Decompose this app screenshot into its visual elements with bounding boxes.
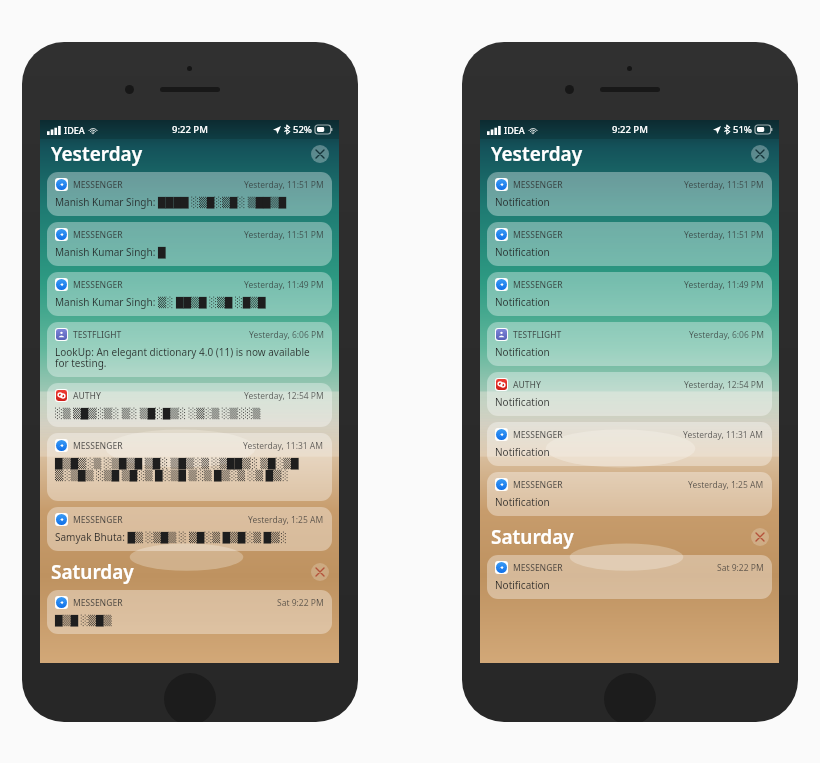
staticText: MESSENGER — [73, 597, 123, 609]
staticText: Manish Kumar Singh: ████ ░▒█░▒█░ ▒██▒█ — [55, 195, 287, 209]
staticText: Yesterday, 6:06 PM — [689, 329, 764, 341]
staticText: MESSENGER — [513, 429, 563, 441]
staticText: MESSENGER — [73, 229, 123, 241]
staticText: Yesterday, 11:49 PM — [684, 279, 764, 291]
staticText: Yesterday — [51, 141, 143, 167]
staticText: Sat 9:22 PM — [717, 562, 764, 574]
staticText: 9:22 PM — [172, 123, 208, 136]
staticText: AUTHY — [513, 379, 541, 391]
staticText: IDEA — [504, 124, 525, 136]
staticText: Yesterday, 6:06 PM — [249, 329, 324, 341]
staticText: Manish Kumar Singh: █ — [55, 245, 166, 259]
button[interactable]: MESSENGER — [487, 422, 772, 466]
staticText: 52% — [293, 123, 312, 136]
staticText: Yesterday, 11:49 PM — [244, 279, 324, 291]
staticText: Yesterday, 1:25 AM — [688, 479, 764, 491]
button[interactable]: TESTFLIGHT — [487, 322, 772, 366]
staticText: LookUp: An elegant dictionary 4.0 (11) i… — [55, 345, 324, 370]
button[interactable]: MESSENGER — [47, 272, 332, 316]
button[interactable]: MESSENGER — [487, 272, 772, 316]
staticText: Notification — [495, 245, 550, 259]
staticText: MESSENGER — [73, 514, 123, 526]
staticText: Saturday — [491, 524, 574, 550]
staticText: Yesterday, 12:54 PM — [244, 390, 324, 402]
button[interactable]: MESSENGER — [47, 590, 332, 634]
button[interactable]: MESSENGER — [47, 222, 332, 266]
staticText: AUTHY — [73, 390, 101, 402]
button[interactable]: MESSENGER — [47, 507, 332, 551]
staticText: Samyak Bhuta: █▒ ░▒█▒ ░ ▒█░▒ █▒█░▒ █▒░ — [55, 530, 287, 544]
staticText: ░▒ ▒█▒░▒░ ▒░ ▒█░█▒░ ░▒░▒ ░▒░░▒ — [55, 406, 261, 420]
staticText: Sat 9:22 PM — [277, 597, 324, 609]
button[interactable]: MESSENGER — [47, 172, 332, 216]
staticText: █▒█ ░▒█▒ — [55, 613, 112, 627]
staticText: Yesterday, 11:51 PM — [244, 179, 324, 191]
staticText: MESSENGER — [513, 562, 563, 574]
staticText: Yesterday, 11:51 PM — [684, 229, 764, 241]
staticText: Saturday — [51, 559, 134, 585]
button[interactable]: MESSENGER — [47, 433, 332, 501]
button[interactable]: MESSENGER — [487, 472, 772, 516]
staticText: Yesterday — [491, 141, 583, 167]
staticText: Yesterday, 12:54 PM — [684, 379, 764, 391]
staticText: 51% — [733, 123, 752, 136]
staticText: Notification — [495, 495, 550, 509]
staticText: Yesterday, 1:25 AM — [248, 514, 324, 526]
staticText: Manish Kumar Singh: ▒░ ██▒█ ░▒█ ░█▒█ — [55, 295, 266, 309]
staticText: Notification — [495, 578, 550, 592]
button[interactable]: Clear Saturday — [311, 563, 329, 581]
button[interactable]: AUTHY — [47, 383, 332, 427]
button[interactable]: Clear Saturday — [751, 528, 769, 546]
staticText: Notification — [495, 195, 550, 209]
staticText: MESSENGER — [513, 279, 563, 291]
staticText: █▒█▒░▒ ░▒█▒█ ▒█░ ▒█▒░▒ ░▒██▒░ ▒█░▒█ ▒░▒█… — [55, 456, 324, 481]
staticText: Notification — [495, 445, 550, 459]
button[interactable]: Home — [164, 673, 216, 722]
button[interactable]: TESTFLIGHT — [47, 322, 332, 377]
button[interactable]: MESSENGER — [487, 555, 772, 599]
button[interactable]: Home — [604, 673, 656, 722]
staticText: MESSENGER — [73, 179, 123, 191]
staticText: TESTFLIGHT — [73, 329, 122, 341]
staticText: Notification — [495, 295, 550, 309]
staticText: Yesterday, 11:51 PM — [684, 179, 764, 191]
staticText: Yesterday, 11:31 AM — [683, 429, 764, 441]
staticText: MESSENGER — [73, 279, 123, 291]
staticText: TESTFLIGHT — [513, 329, 562, 341]
button[interactable]: Clear Yesterday — [751, 145, 769, 163]
staticText: MESSENGER — [513, 229, 563, 241]
staticText: MESSENGER — [73, 440, 123, 452]
staticText: MESSENGER — [513, 479, 563, 491]
staticText: Yesterday, 11:51 PM — [244, 229, 324, 241]
button[interactable]: MESSENGER — [487, 222, 772, 266]
staticText: Notification — [495, 395, 550, 409]
staticText: MESSENGER — [513, 179, 563, 191]
staticText: Yesterday, 11:31 AM — [243, 440, 324, 452]
staticText: Notification — [495, 345, 550, 359]
button[interactable]: Clear Yesterday — [311, 145, 329, 163]
staticText: IDEA — [64, 124, 85, 136]
staticText: 9:22 PM — [612, 123, 648, 136]
button[interactable]: MESSENGER — [487, 172, 772, 216]
button[interactable]: AUTHY — [487, 372, 772, 416]
